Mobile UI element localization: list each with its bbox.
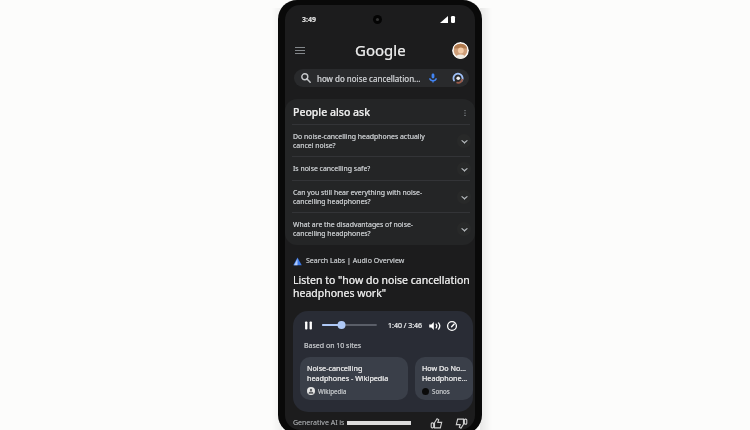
staticText: Noise-cancelling headphones - Wikipedia: [307, 363, 389, 383]
staticText: Can you still hear everything with noise…: [293, 188, 457, 206]
button[interactable]: Can you still hear everything with noise…: [285, 181, 475, 212]
staticText: Search Labs | Audio Overview: [306, 256, 405, 266]
button[interactable]: Account: [452, 42, 469, 59]
staticText: How Do No… Headphone…: [422, 363, 468, 383]
button[interactable]: More options: [458, 106, 471, 119]
button[interactable]: Noise-cancelling headphones - Wikipedia: [300, 357, 408, 400]
button[interactable]: how do noise cancellation...: [294, 69, 469, 87]
staticText: Is noise cancelling safe?: [293, 164, 457, 173]
staticText: Do noise-cancelling headphones actually …: [293, 132, 457, 150]
staticText: Listen to "how do noise cancellation hea…: [293, 273, 470, 300]
staticText: Generative AI is: [293, 418, 347, 428]
button[interactable]: What are the disadvantages of noise- can…: [285, 213, 475, 245]
button[interactable]: Pause: [302, 319, 315, 332]
button[interactable]: Google Lens: [450, 70, 465, 85]
staticText: Wikipedia: [318, 387, 347, 395]
staticText: People also ask: [293, 105, 458, 119]
staticText: What are the disadvantages of noise- can…: [293, 220, 457, 238]
button[interactable]: Do noise-cancelling headphones actually …: [285, 125, 475, 156]
button[interactable]: Menu: [290, 40, 310, 60]
button[interactable]: Playback speed: [445, 319, 458, 332]
staticText: 1:40 / 3:46: [388, 321, 423, 331]
button[interactable]: Thumb up: [429, 416, 443, 430]
staticText: 3:49: [302, 15, 316, 25]
button[interactable]: Volume: [427, 319, 440, 332]
staticText: Google: [355, 40, 406, 60]
staticText: Based on 10 sites: [304, 341, 362, 351]
button[interactable]: How Do No… Headphone…: [415, 357, 473, 400]
button[interactable]: Is noise cancelling safe?: [285, 157, 475, 180]
staticText: how do noise cancellation...: [317, 73, 421, 84]
button[interactable]: Thumb down: [454, 416, 468, 430]
staticText: Sonos: [432, 387, 450, 395]
button[interactable]: Voice search: [426, 71, 439, 84]
